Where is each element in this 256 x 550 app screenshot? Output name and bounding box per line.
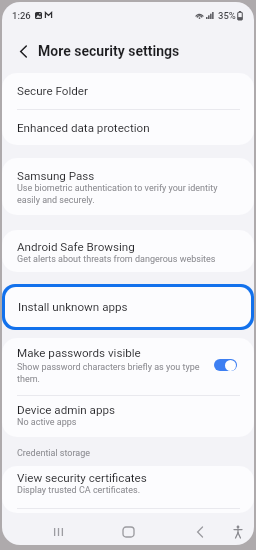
staticText: Samsung Pass bbox=[17, 169, 95, 183]
staticText: Credential storage bbox=[17, 448, 91, 459]
button[interactable]: Back bbox=[184, 516, 216, 545]
staticText: Show password characters briefly as you … bbox=[17, 362, 200, 384]
staticText: Display trusted CA certificates. bbox=[17, 485, 141, 496]
button[interactable]: Make passwords visible bbox=[2, 338, 254, 395]
staticText: 35% bbox=[218, 10, 236, 21]
staticText: Make passwords visible bbox=[17, 346, 141, 360]
staticText: 1:26 bbox=[12, 10, 31, 21]
staticText: Device admin apps bbox=[17, 403, 116, 417]
button[interactable]: Secure Folder bbox=[2, 73, 254, 109]
button[interactable]: Install unknown apps bbox=[5, 287, 251, 327]
button[interactable]: Enhanced data protection bbox=[2, 110, 254, 145]
button[interactable]: Device admin apps bbox=[2, 396, 254, 437]
staticText: Android Safe Browsing bbox=[17, 240, 135, 254]
button[interactable]: Samsung Pass bbox=[2, 158, 254, 215]
staticText: Secure Folder bbox=[17, 84, 88, 98]
button[interactable]: Home bbox=[112, 516, 144, 545]
staticText: More security settings bbox=[38, 43, 180, 59]
button[interactable]: Accessibility bbox=[224, 516, 252, 545]
staticText: Install unknown apps bbox=[18, 300, 128, 314]
staticText: Get alerts about threats from dangerous … bbox=[17, 254, 216, 265]
staticText: Enhanced data protection bbox=[17, 121, 150, 135]
button[interactable]: View security certificates bbox=[2, 466, 254, 508]
button[interactable]: Android Safe Browsing bbox=[2, 230, 254, 272]
staticText: View security certificates bbox=[17, 471, 147, 485]
staticText: No active apps bbox=[17, 417, 77, 428]
button[interactable]: Recent apps bbox=[42, 516, 74, 545]
button[interactable]: Navigate up bbox=[12, 40, 34, 62]
staticText: Use biometric authentication to verify y… bbox=[17, 183, 218, 205]
